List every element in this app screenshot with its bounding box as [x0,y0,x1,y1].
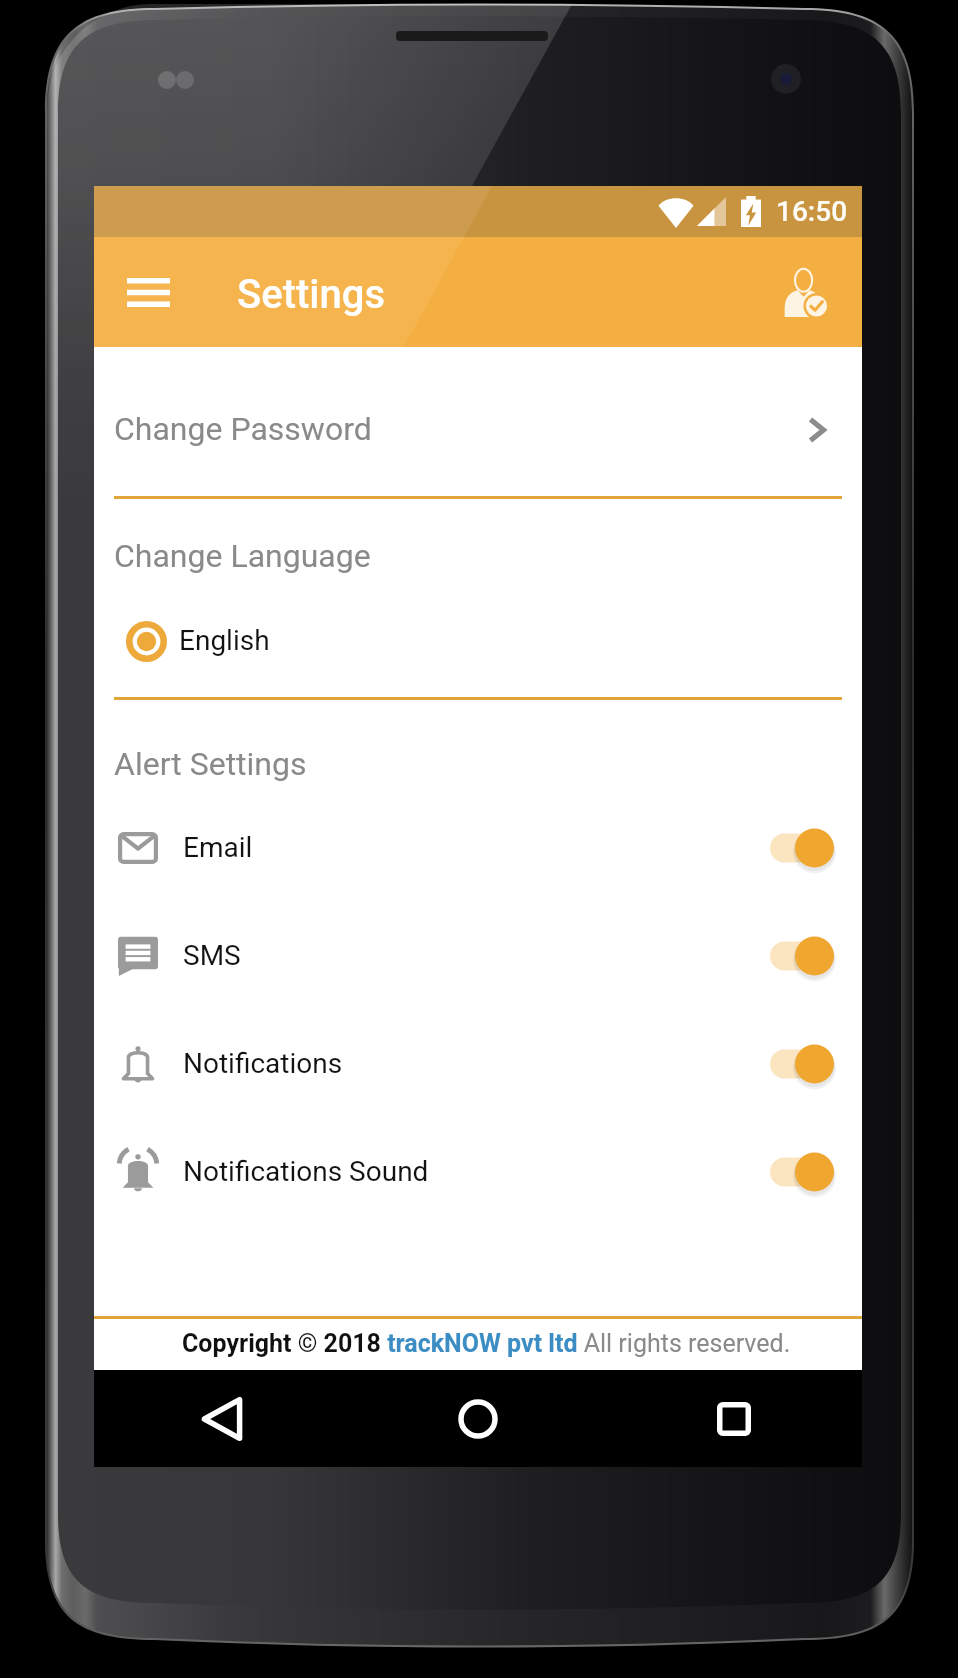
button[interactable]: Toggle on [746,928,834,984]
button[interactable]: Account verified [767,254,843,330]
staticText: Change Password [114,410,372,448]
button[interactable]: Open navigation menu [114,258,182,326]
staticText: Alert Settings [114,745,307,783]
button[interactable]: Toggle on [746,820,834,876]
button[interactable]: SMS [94,902,862,1010]
button[interactable]: Notifications [94,1010,862,1118]
button[interactable]: Email [94,794,862,902]
button[interactable]: Change Password [94,376,862,484]
staticText: Email [183,831,253,864]
button[interactable]: Notifications Sound [94,1118,862,1226]
staticText: Notifications Sound [183,1155,429,1188]
button[interactable]: English [94,610,862,672]
button[interactable]: Toggle on [746,1036,834,1092]
staticText: SMS [183,939,241,972]
staticText: Change Language [114,537,371,575]
staticText: Settings [237,271,386,318]
staticText: English [179,624,270,657]
button[interactable]: Recent apps [606,1370,862,1467]
staticText: Copyright © 2018 trackNOW pvt ltd All ri… [182,1329,791,1358]
staticText: 16:50 [776,195,848,228]
button[interactable]: Toggle on [746,1144,834,1200]
button[interactable]: Back [94,1370,350,1467]
button[interactable]: Home [350,1370,606,1467]
staticText: Notifications [183,1047,343,1080]
